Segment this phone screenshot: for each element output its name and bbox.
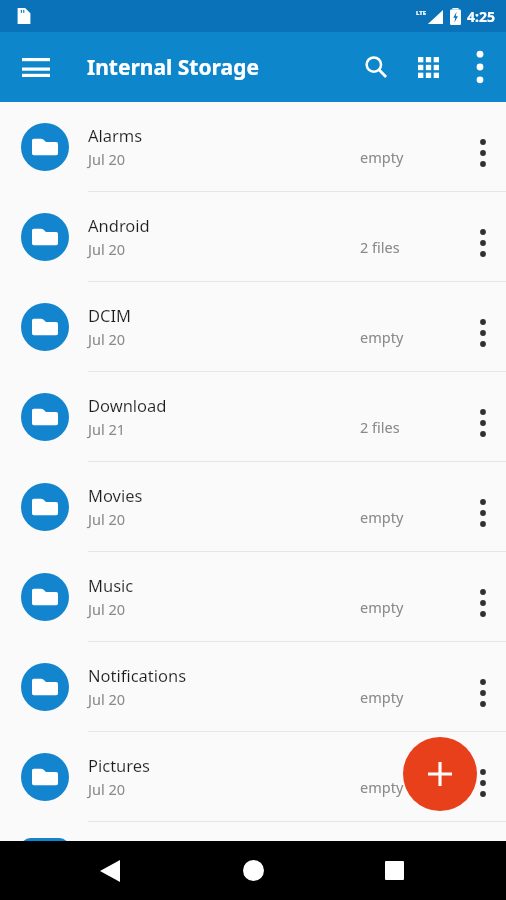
staticText: empty <box>360 507 460 527</box>
button[interactable]: Open navigation drawer <box>10 41 62 93</box>
staticText: empty <box>360 777 460 797</box>
staticText: 2 files <box>360 237 460 257</box>
staticText: Jul 20 <box>88 329 126 349</box>
staticText: Jul 20 <box>88 689 126 709</box>
button[interactable]: More options for Pictures <box>460 750 506 816</box>
button[interactable]: More options for Music <box>460 570 506 636</box>
staticText: Download <box>88 394 167 416</box>
button[interactable]: More options for Android <box>460 210 506 276</box>
staticText: Movies <box>88 484 143 506</box>
staticText: 2 files <box>360 417 460 437</box>
button[interactable]: Grid view <box>402 41 454 93</box>
staticText: empty <box>360 147 460 167</box>
staticText: Jul 20 <box>88 239 126 259</box>
staticText: LTE <box>416 9 427 17</box>
button[interactable]: More options <box>454 41 506 93</box>
button[interactable]: Add <box>403 737 477 811</box>
button[interactable]: Home <box>223 841 283 900</box>
button[interactable]: Download <box>0 372 506 462</box>
button[interactable]: Recent apps <box>364 841 424 900</box>
button[interactable]: More options for Movies <box>460 480 506 546</box>
button[interactable]: More options for DCIM <box>460 300 506 366</box>
staticText: empty <box>360 597 460 617</box>
staticText: Jul 21 <box>88 419 126 439</box>
staticText: empty <box>360 327 460 347</box>
button[interactable]: Back <box>80 841 140 900</box>
staticText: Jul 20 <box>88 779 126 799</box>
button[interactable]: Pictures <box>0 732 506 822</box>
staticText: 4:25 <box>467 7 495 26</box>
staticText: Android <box>88 214 150 236</box>
button[interactable]: DCIM <box>0 282 506 372</box>
button[interactable]: More options for Alarms <box>460 120 506 186</box>
staticText: Jul 20 <box>88 509 126 529</box>
button[interactable]: Alarms <box>0 102 506 192</box>
staticText: Jul 20 <box>88 599 126 619</box>
staticText: Internal Storage <box>87 53 259 82</box>
button[interactable]: Notifications <box>0 642 506 732</box>
button[interactable]: Search <box>350 41 402 93</box>
staticText: Music <box>88 574 134 596</box>
staticText: Alarms <box>88 124 143 146</box>
button[interactable]: Movies <box>0 462 506 552</box>
button[interactable]: More options for Notifications <box>460 660 506 726</box>
button[interactable]: More options for Download <box>460 390 506 456</box>
button[interactable]: Android <box>0 192 506 282</box>
staticText: DCIM <box>88 304 132 326</box>
staticText: Notifications <box>88 664 187 686</box>
staticText: Pictures <box>88 754 151 776</box>
staticText: empty <box>360 687 460 707</box>
button[interactable]: Music <box>0 552 506 642</box>
staticText: Jul 20 <box>88 149 126 169</box>
